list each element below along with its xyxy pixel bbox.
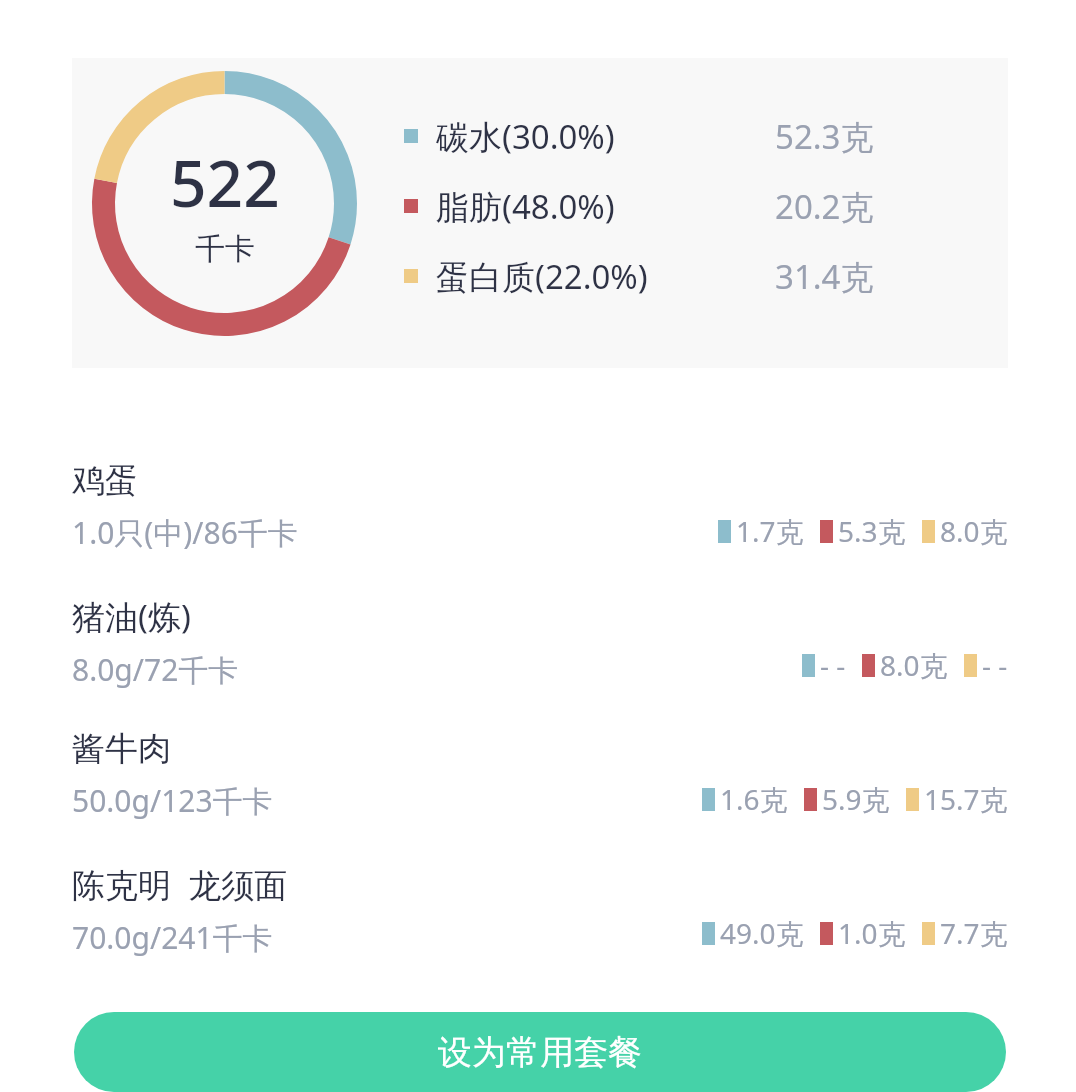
- staticText: 鸡蛋: [72, 460, 138, 502]
- staticText: - -: [982, 646, 1008, 684]
- staticText: 52.3克: [775, 114, 874, 158]
- staticText: 蛋白质(22.0%): [436, 254, 648, 298]
- staticText: 7.7克: [940, 914, 1008, 952]
- staticText: 522: [170, 139, 280, 226]
- other: Calorie breakdown chart: [92, 71, 357, 336]
- staticText: 脂肪(48.0%): [436, 184, 615, 228]
- staticText: 1.0克: [838, 914, 906, 952]
- staticText: 5.9克: [822, 780, 890, 818]
- staticText: 酱牛肉: [72, 728, 171, 770]
- staticText: 陈克明 龙须面: [72, 862, 288, 907]
- button[interactable]: 碳水(30.0%): [404, 114, 874, 158]
- staticText: 碳水(30.0%): [436, 114, 615, 158]
- staticText: 设为常用套餐: [438, 1031, 642, 1074]
- staticText: 20.2克: [775, 184, 874, 228]
- staticText: 50.0g/123千卡: [72, 780, 273, 821]
- staticText: 70.0g/241千卡: [72, 917, 273, 958]
- staticText: 5.3克: [838, 512, 906, 550]
- staticText: 8.0克: [940, 512, 1008, 550]
- button[interactable]: 设为常用套餐: [74, 1012, 1006, 1092]
- staticText: 1.6克: [720, 780, 788, 818]
- staticText: 1.7克: [736, 512, 804, 550]
- button[interactable]: 鸡蛋: [0, 450, 1076, 584]
- button[interactable]: 酱牛肉: [0, 718, 1076, 852]
- staticText: - -: [820, 646, 846, 684]
- button[interactable]: Calorie breakdown chart: [72, 58, 1008, 368]
- staticText: 15.7克: [924, 780, 1008, 818]
- staticText: 49.0克: [720, 914, 804, 952]
- button[interactable]: 脂肪(48.0%): [404, 184, 874, 228]
- staticText: 31.4克: [775, 254, 874, 298]
- button[interactable]: 猪油(炼): [0, 584, 1076, 718]
- staticText: 1.0只(中)/86千卡: [72, 512, 298, 553]
- button[interactable]: 陈克明 龙须面: [0, 852, 1076, 986]
- staticText: 猪油(炼): [72, 594, 191, 639]
- staticText: 8.0克: [880, 646, 948, 684]
- staticText: 8.0g/72千卡: [72, 649, 239, 690]
- button[interactable]: 蛋白质(22.0%): [404, 254, 874, 298]
- staticText: 千卡: [195, 230, 255, 268]
